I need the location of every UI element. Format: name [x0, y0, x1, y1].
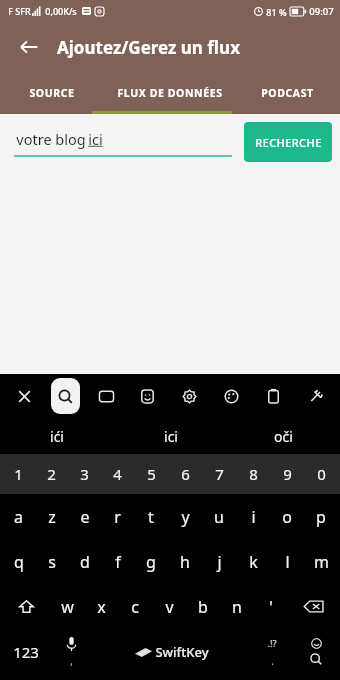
button[interactable]: y [168, 494, 202, 539]
button[interactable]: 5 [134, 454, 168, 494]
button[interactable]: x [84, 584, 118, 629]
staticText: o [282, 506, 292, 528]
staticText: 3 [80, 464, 89, 484]
button[interactable]: z [35, 494, 68, 539]
button[interactable]: b [186, 584, 220, 629]
button[interactable]: k [236, 539, 270, 584]
button[interactable]: f [101, 539, 134, 584]
staticText: h [180, 551, 190, 573]
staticText: F SFR [8, 5, 31, 17]
staticText: 0 [317, 464, 326, 484]
button[interactable]: Stickers [127, 376, 168, 416]
staticText: u [214, 506, 224, 528]
staticText: SOURCE [29, 86, 75, 100]
button[interactable]: r [101, 494, 134, 539]
button[interactable]: Backspace [288, 584, 338, 629]
button[interactable]: u [202, 494, 236, 539]
staticText: 2 [47, 464, 56, 484]
staticText: 1 [14, 464, 23, 484]
staticText: 4 [113, 464, 122, 484]
button[interactable]: 2 [35, 454, 68, 494]
staticText: 8 [249, 464, 258, 484]
button[interactable]: 1 [2, 454, 35, 494]
button[interactable]: 123 [2, 629, 50, 675]
button[interactable]: p [304, 494, 338, 539]
button[interactable]: a [2, 494, 35, 539]
staticText: g [146, 551, 156, 573]
staticText: . [271, 654, 274, 668]
button[interactable]: 3 [68, 454, 101, 494]
staticText: x [97, 596, 106, 618]
button[interactable]: .!? [251, 629, 293, 675]
staticText: RECHERCHE [255, 135, 322, 150]
staticText: m [314, 551, 329, 573]
staticText: e [80, 506, 90, 528]
button[interactable]: Pin [294, 376, 336, 416]
staticText: w [61, 596, 74, 618]
staticText: FLUX DE DONNÉES [117, 86, 223, 100]
staticText: r [114, 506, 121, 528]
staticText: oči [274, 427, 293, 446]
button[interactable]: SOURCE [0, 72, 104, 114]
button[interactable]: m [304, 539, 338, 584]
button[interactable]: oči [227, 418, 340, 454]
staticText: votre blog [14, 129, 88, 149]
staticText: j [217, 551, 222, 573]
button[interactable]: 4 [101, 454, 134, 494]
staticText: y [181, 506, 190, 528]
staticText: PODCAST [261, 86, 314, 100]
staticText: a [14, 506, 23, 528]
button[interactable]: Space [92, 629, 251, 675]
staticText: 7 [215, 464, 224, 484]
button[interactable]: h [168, 539, 202, 584]
button[interactable]: FLUX DE DONNÉES [104, 72, 235, 114]
staticText: d [80, 551, 90, 573]
button[interactable]: w [51, 584, 84, 629]
staticText: 5 [147, 464, 156, 484]
button[interactable]: RECHERCHE [244, 122, 332, 162]
staticText: q [14, 551, 24, 573]
button[interactable]: Emoji and search [293, 629, 338, 675]
button[interactable]: l [270, 539, 304, 584]
button[interactable]: Settings [168, 376, 210, 416]
button[interactable]: c [118, 584, 152, 629]
button[interactable]: s [35, 539, 68, 584]
button[interactable]: PODCAST [235, 72, 340, 114]
staticText: c [131, 596, 139, 618]
button[interactable]: Shift [2, 584, 51, 629]
button[interactable]: q [2, 539, 35, 584]
button[interactable]: o [270, 494, 304, 539]
button[interactable]: Theme [210, 376, 252, 416]
button[interactable]: g [134, 539, 168, 584]
button[interactable]: Search [51, 378, 80, 414]
staticText: f [115, 551, 121, 573]
button[interactable]: 6 [168, 454, 202, 494]
staticText: 9 [283, 464, 292, 484]
button[interactable]: Back [10, 28, 48, 66]
button[interactable]: e [68, 494, 101, 539]
staticText: ici [164, 427, 178, 446]
button[interactable]: Close [4, 376, 45, 416]
button[interactable]: j [202, 539, 236, 584]
staticText: ići [50, 427, 64, 446]
staticText: Ajoutez/Gerez un flux [57, 36, 240, 59]
button[interactable]: 7 [202, 454, 236, 494]
button[interactable]: n [220, 584, 254, 629]
button[interactable]: ici [114, 418, 227, 454]
staticText: 0,00K/s [45, 5, 77, 17]
button[interactable]: ići [0, 418, 114, 454]
button[interactable]: t [134, 494, 168, 539]
staticText: p [316, 506, 326, 528]
button[interactable]: 8 [236, 454, 270, 494]
button[interactable]: ' [254, 584, 288, 629]
button[interactable]: d [68, 539, 101, 584]
button[interactable]: 0 [304, 454, 338, 494]
button[interactable]: 9 [270, 454, 304, 494]
button[interactable]: Voice input [50, 629, 92, 675]
button[interactable]: GIF [86, 376, 127, 416]
button[interactable]: v [152, 584, 186, 629]
staticText: 123 [13, 642, 39, 662]
button[interactable]: Clipboard [252, 376, 294, 416]
button[interactable]: i [236, 494, 270, 539]
staticText: SwiftKey [155, 643, 209, 661]
